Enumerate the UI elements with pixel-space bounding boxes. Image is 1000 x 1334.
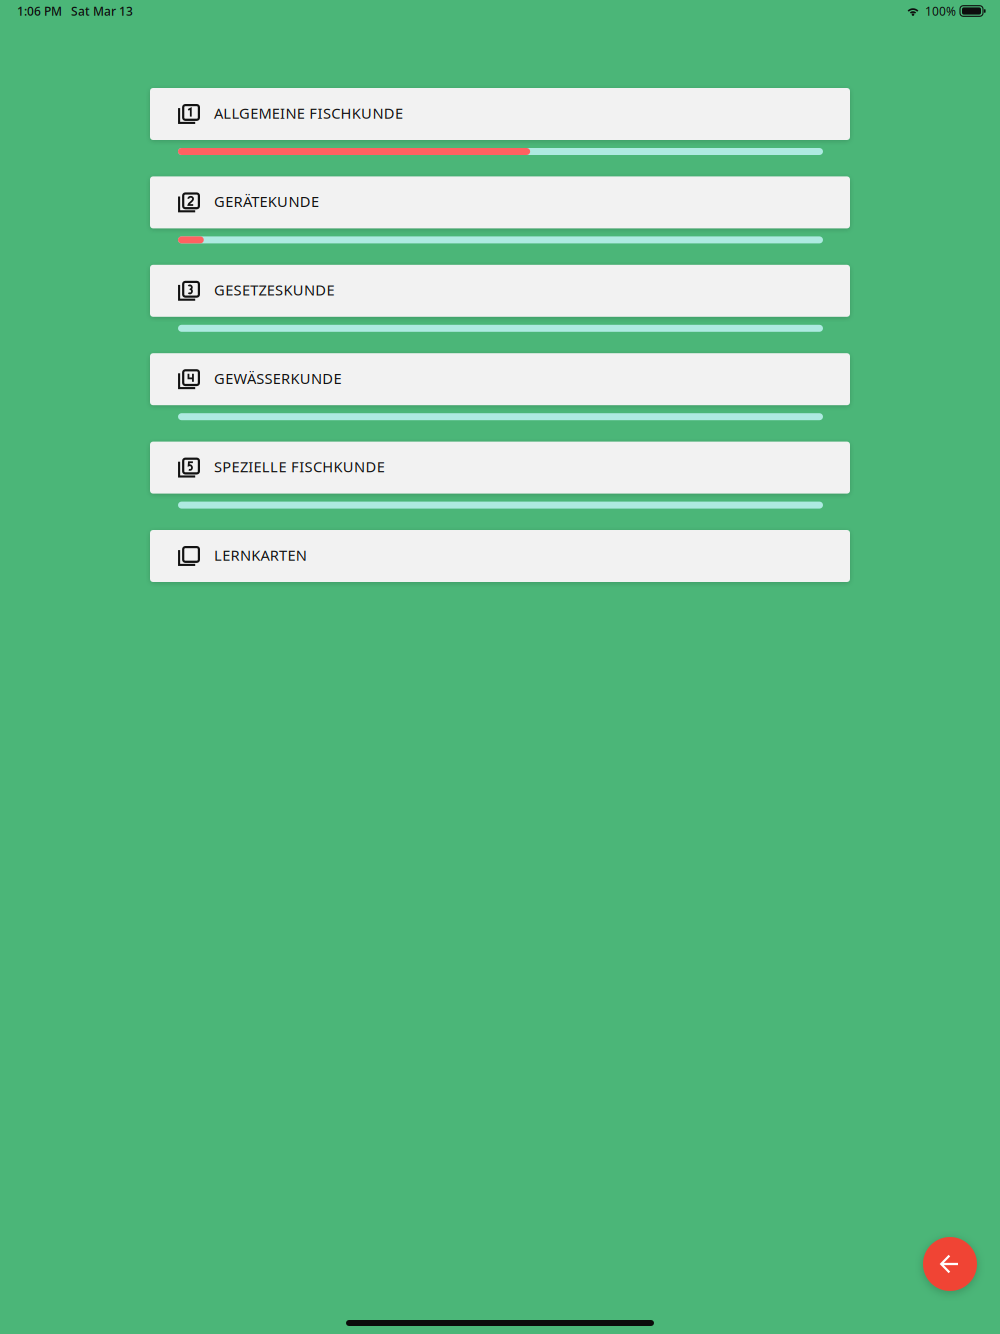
staticText: GESETZESKUNDE [214, 280, 335, 300]
staticText: 100% [925, 3, 956, 19]
button[interactable]: GEWÄSSERKUNDE [150, 353, 850, 405]
button[interactable]: GERÄTEKUNDE [150, 176, 850, 228]
button[interactable]: Zurück [923, 1237, 977, 1291]
staticText: SPEZIELLE FISCHKUNDE [214, 457, 385, 476]
button[interactable]: SPEZIELLE FISCHKUNDE [150, 442, 850, 494]
staticText: Sat Mar 13 [71, 3, 133, 19]
staticText: ALLGEMEINE FISCHKUNDE [214, 103, 403, 123]
staticText: GEWÄSSERKUNDE [214, 368, 342, 388]
staticText: 1:06 PM [17, 3, 62, 19]
button[interactable]: GESETZESKUNDE [150, 265, 850, 317]
button[interactable]: LERNKARTEN [150, 530, 850, 582]
staticText: LERNKARTEN [214, 545, 307, 565]
button[interactable]: ALLGEMEINE FISCHKUNDE [150, 88, 850, 140]
staticText: GERÄTEKUNDE [214, 192, 319, 211]
